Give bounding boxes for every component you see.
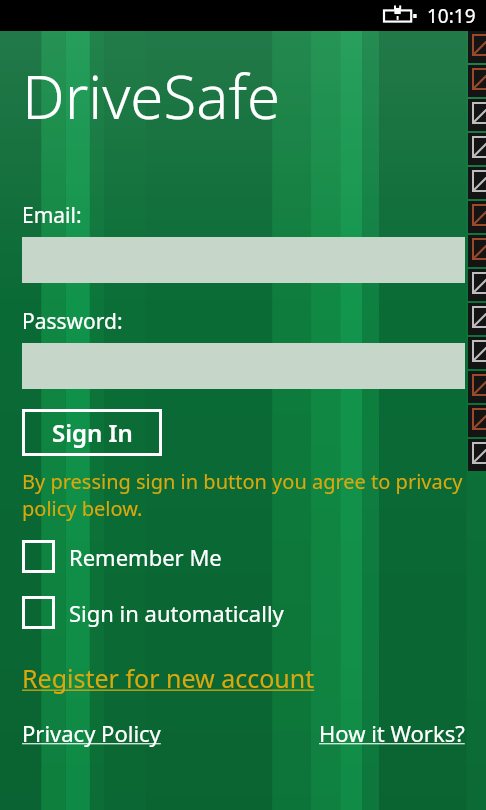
button[interactable]: Register for new account — [22, 661, 315, 695]
staticText: Remember Me — [69, 542, 222, 572]
staticText: 10:19 — [427, 3, 476, 29]
button[interactable]: Remember Me — [22, 534, 465, 579]
staticText: By pressing sign in button you agree to … — [22, 468, 465, 522]
staticText: Email: — [22, 201, 82, 230]
staticText: Sign In — [52, 416, 133, 449]
button[interactable]: Sign In — [22, 409, 162, 456]
button[interactable]: How it Works? — [319, 718, 465, 748]
staticText: Register for new account — [22, 661, 315, 695]
staticText: Sign in automatically — [69, 598, 284, 628]
staticText: DriveSafe — [22, 55, 281, 137]
staticText: How it Works? — [319, 718, 465, 748]
button[interactable]: Privacy Policy — [22, 718, 161, 748]
staticText: Password: — [22, 307, 123, 336]
button[interactable]: Sign in automatically — [22, 590, 465, 635]
staticText: Privacy Policy — [22, 718, 161, 748]
